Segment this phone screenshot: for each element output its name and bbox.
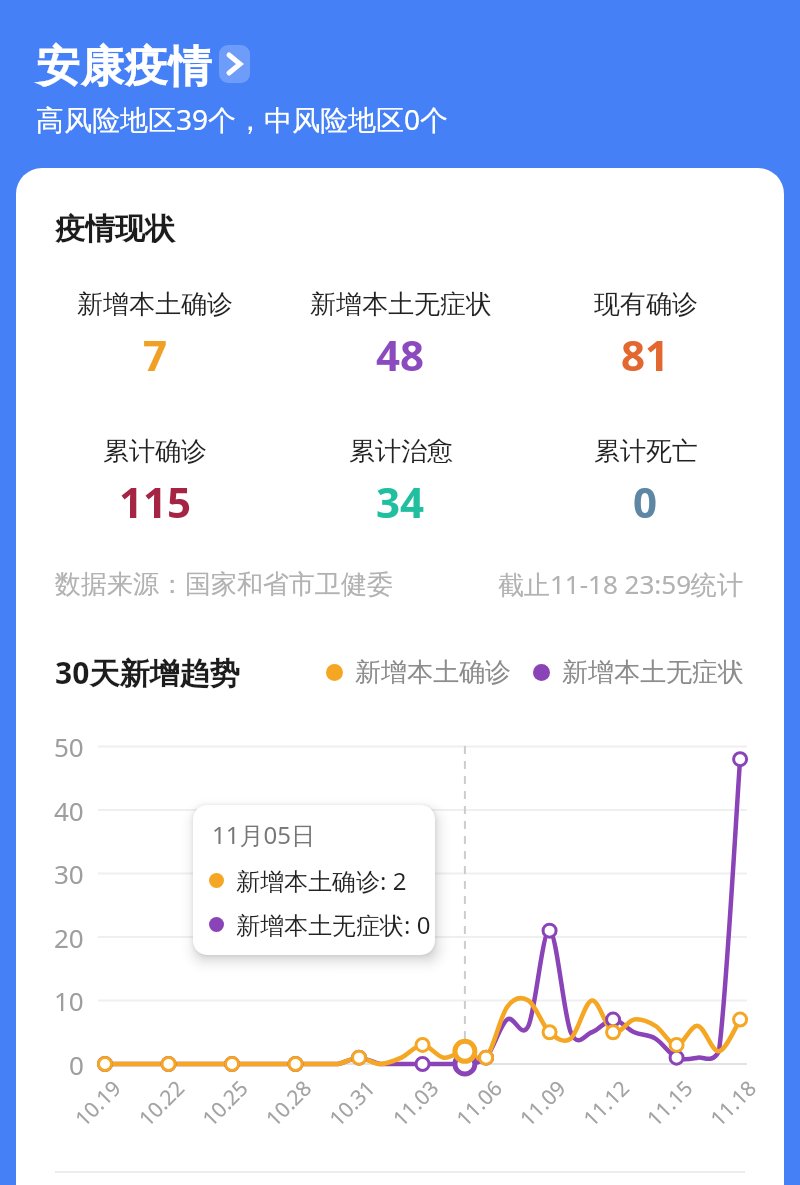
staticText: 新增本土无症状 [562, 656, 744, 689]
staticText: 现有确诊 [594, 288, 698, 321]
button[interactable]: 11月05日 [193, 805, 435, 955]
staticText: 累计死亡 [594, 435, 698, 468]
staticText: 新增本土确诊: 2 [236, 864, 407, 897]
button[interactable]: 0 [523, 473, 768, 525]
staticText: 34 [376, 473, 425, 525]
staticText: 81 [621, 326, 670, 378]
staticText: 新增本土确诊 [355, 656, 511, 689]
staticText: 7 [143, 326, 168, 378]
button[interactable]: 累计死亡 [523, 433, 768, 469]
staticText: 新增本土无症状 [310, 288, 492, 321]
button[interactable]: 安康疫情 [36, 40, 250, 94]
staticText: 新增本土无症状: 0 [236, 908, 431, 941]
button[interactable]: 7 [32, 326, 278, 378]
button[interactable]: 48 [278, 326, 523, 378]
staticText: 11月05日 [212, 818, 315, 851]
button[interactable]: 新增本土确诊 [32, 286, 278, 322]
button[interactable]: 34 [278, 473, 523, 525]
staticText: 安康疫情 [36, 40, 212, 94]
button[interactable]: 新增本土无症状 [278, 286, 523, 322]
staticText: 48 [376, 326, 425, 378]
staticText: 115 [119, 473, 192, 525]
button[interactable]: 81 [523, 326, 768, 378]
staticText: 0 [633, 473, 658, 525]
staticText: 高风险地区39个，中风险地区0个 [36, 100, 449, 138]
button[interactable]: 现有确诊 [523, 286, 768, 322]
staticText: 新增本土确诊 [77, 288, 233, 321]
button[interactable]: 累计治愈 [278, 433, 523, 469]
button[interactable]: 115 [32, 473, 278, 525]
staticText: 累计确诊 [103, 435, 207, 468]
staticText: 累计治愈 [349, 435, 453, 468]
button[interactable]: 累计确诊 [32, 433, 278, 469]
staticText: 截止11-18 23:59统计 [498, 566, 744, 602]
staticText: 疫情现状 [55, 210, 175, 248]
staticText: 30天新增趋势 [55, 652, 240, 693]
staticText: 数据来源：国家和省市卫健委 [55, 568, 393, 601]
